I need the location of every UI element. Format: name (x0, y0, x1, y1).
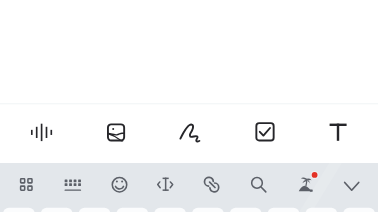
button[interactable]: Checklist (238, 103, 294, 161)
button[interactable]: Apps (4, 163, 48, 207)
button[interactable]: Keyboard (51, 163, 95, 207)
button[interactable]: Search (236, 163, 280, 207)
button[interactable]: Text editing (144, 163, 188, 207)
button[interactable]: Link (190, 163, 234, 207)
button[interactable]: Stickers (284, 163, 328, 207)
button[interactable]: Handwriting (163, 103, 219, 161)
button[interactable]: Insert image (88, 103, 144, 161)
button[interactable]: Voice (14, 103, 70, 161)
button[interactable]: Text formatting (311, 103, 367, 161)
button[interactable]: Collapse keyboard (330, 163, 374, 207)
button[interactable]: Emoji (98, 163, 142, 207)
